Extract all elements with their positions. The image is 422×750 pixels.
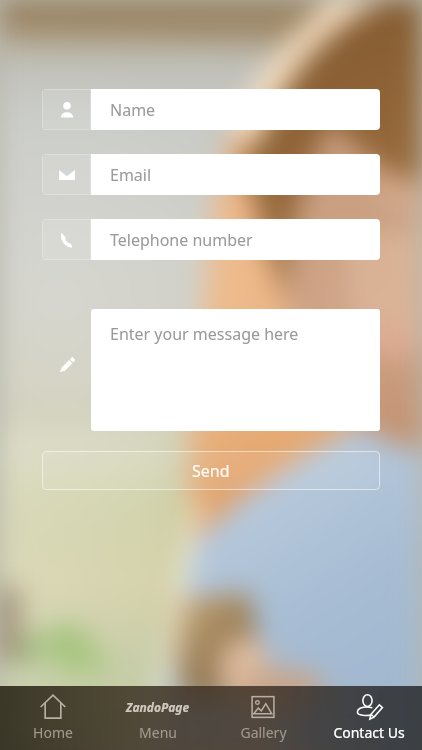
button[interactable]: Email (42, 154, 380, 195)
staticText: Contact Us (333, 723, 405, 742)
button[interactable]: Contact Us (316, 686, 422, 750)
button[interactable]: Send (42, 451, 380, 490)
button[interactable]: ZandoPage (105, 686, 210, 750)
button[interactable]: Telephone number (42, 219, 380, 260)
staticText: Email (110, 164, 152, 186)
staticText: Home (33, 723, 73, 742)
staticText: Enter your message here (110, 323, 299, 345)
staticText: Telephone number (110, 229, 253, 251)
button[interactable]: Gallery (210, 686, 316, 750)
staticText: Gallery (240, 723, 287, 742)
staticText: Name (110, 99, 156, 121)
staticText: ZandoPage (126, 699, 190, 715)
button[interactable]: Enter your message here (42, 296, 380, 436)
staticText: Menu (139, 723, 177, 742)
staticText: Send (192, 460, 230, 482)
button[interactable]: Home (0, 686, 105, 750)
button[interactable]: Name (42, 89, 380, 130)
